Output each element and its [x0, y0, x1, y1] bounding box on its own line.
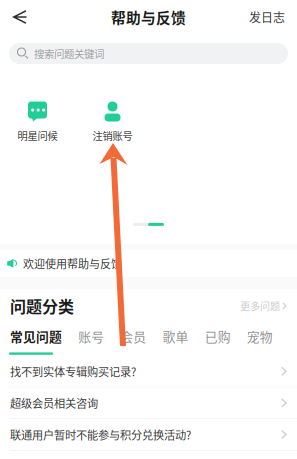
button[interactable]: 已购 — [204, 323, 232, 349]
staticText: 问题分类 — [10, 294, 74, 317]
button[interactable]: 找不到实体专辑购买记录? — [0, 356, 297, 387]
button[interactable]: 超级会员相关咨询 — [0, 387, 297, 419]
button[interactable]: 会员 — [119, 323, 147, 349]
staticText: 搜索问题关键词 — [34, 46, 104, 61]
button[interactable]: 搜索问题关键词 — [9, 43, 288, 64]
button[interactable]: 返回 — [6, 3, 34, 31]
staticText: 明星问候 — [17, 128, 57, 143]
button[interactable]: 联通用户暂时不能参与积分兑换活动? — [0, 419, 297, 451]
staticText: 会员 — [120, 327, 146, 345]
button[interactable]: 账号 — [77, 323, 105, 349]
staticText: 宠物 — [247, 327, 273, 345]
button[interactable]: 注销账号 — [75, 101, 150, 143]
button[interactable]: 更多问题 — [240, 298, 287, 313]
staticText: 常见问题 — [10, 327, 62, 345]
staticText: 账号 — [78, 327, 104, 345]
staticText: 欢迎使用帮助与反馈 — [23, 255, 122, 271]
button[interactable]: 宠物 — [246, 323, 274, 349]
staticText: 注销账号 — [92, 128, 132, 143]
button[interactable]: 常见问题 — [9, 323, 63, 349]
staticText: 找不到实体专辑购买记录? — [10, 363, 136, 379]
staticText: 发日志 — [249, 8, 285, 26]
button[interactable]: 歌单 — [161, 323, 189, 349]
staticText: 帮助与反馈 — [111, 6, 186, 28]
button[interactable]: 发日志 — [243, 2, 291, 32]
staticText: 超级会员相关咨询 — [10, 395, 98, 411]
staticText: 已购 — [205, 327, 231, 345]
button[interactable]: 明星问候 — [0, 101, 75, 143]
staticText: 歌单 — [162, 327, 188, 345]
staticText: 更多问题 — [240, 298, 280, 313]
staticText: 联通用户暂时不能参与积分兑换活动? — [10, 426, 191, 443]
